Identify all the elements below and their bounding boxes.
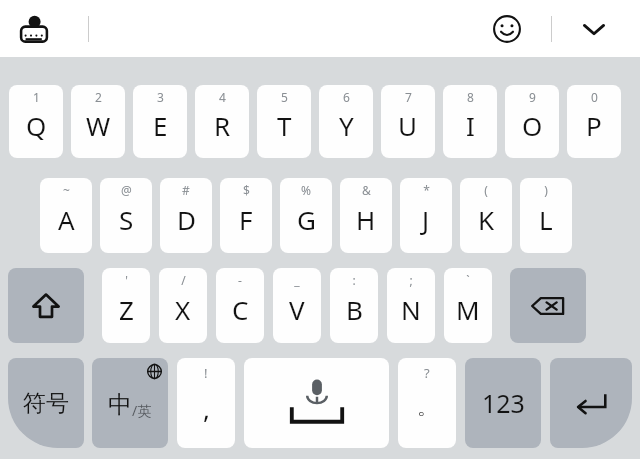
button[interactable]: :	[330, 268, 378, 343]
staticText: 符号	[23, 389, 69, 418]
staticText: -	[238, 272, 242, 288]
button[interactable]: 9	[505, 85, 559, 158]
button[interactable]: 3	[133, 85, 187, 158]
staticText: 3	[157, 89, 164, 105]
staticText: 2	[95, 89, 102, 105]
staticText: ~	[63, 182, 70, 198]
staticText: W	[86, 108, 111, 143]
staticText: 7	[405, 89, 412, 105]
staticText: ,	[203, 391, 210, 426]
button[interactable]: $	[220, 178, 272, 253]
staticText: L	[539, 202, 553, 237]
button[interactable]: Enter	[550, 358, 632, 448]
staticText: 5	[281, 89, 288, 105]
staticText: 9	[529, 89, 536, 105]
button[interactable]: _	[273, 268, 321, 343]
button[interactable]: 2	[71, 85, 125, 158]
staticText: $	[243, 182, 250, 198]
button[interactable]: 123	[465, 358, 541, 448]
staticText: O	[522, 108, 543, 143]
staticText: ;	[409, 272, 413, 288]
staticText: 中	[108, 390, 132, 420]
button[interactable]: 符号	[8, 358, 84, 448]
staticText: ?	[424, 364, 430, 382]
button[interactable]: 4	[195, 85, 249, 158]
button[interactable]: 6	[319, 85, 373, 158]
button[interactable]: 7	[381, 85, 435, 158]
staticText: C	[232, 292, 249, 327]
staticText: 8	[467, 89, 474, 105]
button[interactable]: Shift	[8, 268, 84, 343]
button[interactable]: @	[100, 178, 152, 253]
button[interactable]: #	[160, 178, 212, 253]
staticText: K	[478, 202, 495, 237]
staticText: 4	[219, 89, 226, 105]
staticText: B	[346, 292, 363, 327]
staticText: I	[466, 108, 475, 143]
staticText: 。	[417, 395, 437, 420]
staticText: V	[289, 292, 305, 327]
staticText: X	[175, 292, 191, 327]
staticText: Q	[26, 108, 47, 143]
button[interactable]: -	[216, 268, 264, 343]
staticText: N	[401, 292, 421, 327]
staticText: /	[181, 272, 186, 288]
button[interactable]: !	[177, 358, 235, 448]
button[interactable]: 8	[443, 85, 497, 158]
button[interactable]: 1	[9, 85, 63, 158]
staticText: 6	[343, 89, 350, 105]
button[interactable]: ~	[40, 178, 92, 253]
staticText: Z	[119, 292, 134, 327]
button[interactable]: Space	[244, 358, 389, 448]
staticText: '	[125, 272, 128, 288]
staticText: F	[239, 202, 253, 237]
staticText: M	[456, 292, 480, 327]
staticText: )	[544, 182, 548, 198]
staticText: S	[119, 202, 134, 237]
staticText: 0	[591, 89, 598, 105]
button[interactable]: *	[400, 178, 452, 253]
staticText: G	[297, 202, 316, 237]
button[interactable]: Backspace	[510, 268, 586, 343]
staticText: #	[182, 182, 190, 198]
staticText: /英	[132, 401, 152, 420]
button[interactable]: 0	[567, 85, 621, 158]
button[interactable]: /	[159, 268, 207, 343]
staticText: 1	[33, 89, 40, 105]
button[interactable]: 中	[92, 358, 168, 448]
staticText: E	[153, 108, 168, 143]
staticText: A	[58, 202, 75, 237]
staticText: (	[484, 182, 488, 198]
button[interactable]: ;	[387, 268, 435, 343]
button[interactable]: (	[460, 178, 512, 253]
staticText: P	[586, 108, 602, 143]
staticText: &	[362, 182, 371, 198]
staticText: @	[121, 182, 132, 198]
button[interactable]: Emoji	[486, 8, 528, 50]
button[interactable]: &	[340, 178, 392, 253]
staticText: T	[277, 108, 292, 143]
button[interactable]: `	[444, 268, 492, 343]
staticText: U	[398, 108, 418, 143]
button[interactable]: )	[520, 178, 572, 253]
staticText: `	[466, 272, 470, 288]
button[interactable]: '	[102, 268, 150, 343]
button[interactable]: Hide keyboard	[572, 7, 616, 51]
button[interactable]: ?	[398, 358, 456, 448]
button[interactable]: 5	[257, 85, 311, 158]
staticText: :	[352, 272, 356, 288]
staticText: %	[301, 182, 311, 198]
staticText: Y	[339, 108, 354, 143]
staticText: R	[214, 108, 231, 143]
button[interactable]: Input method	[14, 9, 54, 49]
staticText: *	[423, 182, 430, 198]
staticText: D	[177, 202, 196, 237]
button[interactable]: %	[280, 178, 332, 253]
staticText: J	[422, 202, 430, 237]
staticText: _	[294, 272, 300, 288]
staticText: H	[356, 202, 376, 237]
staticText: 123	[482, 386, 525, 420]
staticText: !	[204, 364, 208, 382]
